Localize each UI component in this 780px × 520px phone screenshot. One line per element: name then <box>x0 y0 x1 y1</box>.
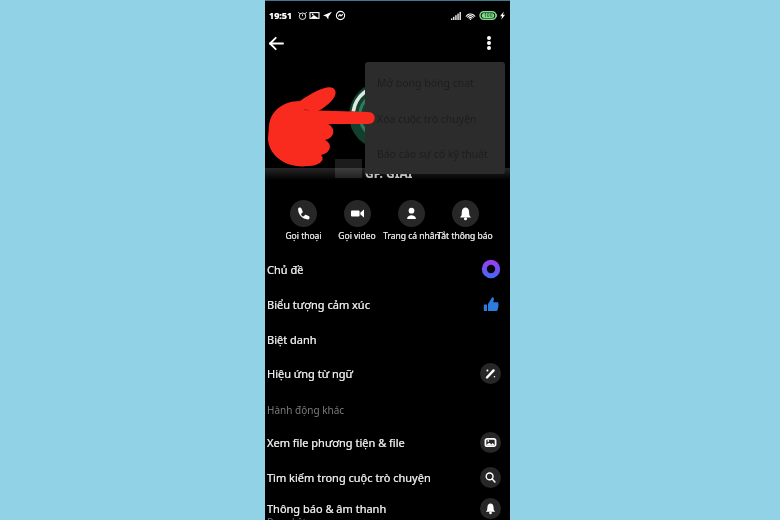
staticText: GP. GIẢI <box>365 165 413 181</box>
staticText: Báo cáo sự cố kỹ thuật <box>377 147 488 161</box>
button[interactable]: Back <box>261 28 291 58</box>
staticText: Thông báo & âm thanh <box>267 501 387 516</box>
staticText: Gọi video <box>338 230 376 242</box>
button[interactable]: Hiệu ứng từ ngữ <box>265 356 510 390</box>
staticText: Xóa cuộc trò chuyện <box>377 112 477 126</box>
staticText: Hành động khác <box>267 403 345 417</box>
staticText: Hiệu ứng từ ngữ <box>267 366 353 381</box>
button[interactable]: Trang cá nhân <box>371 200 451 242</box>
button[interactable]: Thông báo & âm thanh <box>265 491 510 520</box>
button[interactable]: Xóa cuộc trò chuyện <box>365 102 505 136</box>
button[interactable]: More options <box>474 28 504 58</box>
button[interactable]: Biểu tượng cảm xúc <box>265 287 510 321</box>
staticText: 19:51 <box>269 9 293 21</box>
button[interactable]: Tắt thông báo <box>425 200 505 242</box>
staticText: Biểu tượng cảm xúc <box>267 297 370 312</box>
button[interactable]: Xem file phương tiện & file <box>265 425 510 459</box>
button[interactable]: Biệt danh <box>265 322 510 356</box>
staticText: Gọi thoại <box>285 230 322 242</box>
button[interactable]: Gọi video <box>317 200 397 242</box>
staticText: Xem file phương tiện & file <box>267 435 405 450</box>
staticText: Mở bong bóng chat <box>377 76 474 90</box>
staticText: Chủ đề <box>267 262 304 277</box>
staticText: Tìm kiếm trong cuộc trò chuyện <box>267 470 431 485</box>
button[interactable]: Chủ đề <box>265 252 510 286</box>
staticText: Biệt danh <box>267 332 317 347</box>
button[interactable]: Gọi thoại <box>263 200 343 242</box>
button[interactable]: Tìm kiếm trong cuộc trò chuyện <box>265 460 510 494</box>
staticText: Đang bật <box>267 515 306 520</box>
staticText: 100 <box>484 12 493 19</box>
staticText: Tắt thông báo <box>437 230 493 242</box>
staticText: Trang cá nhân <box>383 230 440 242</box>
